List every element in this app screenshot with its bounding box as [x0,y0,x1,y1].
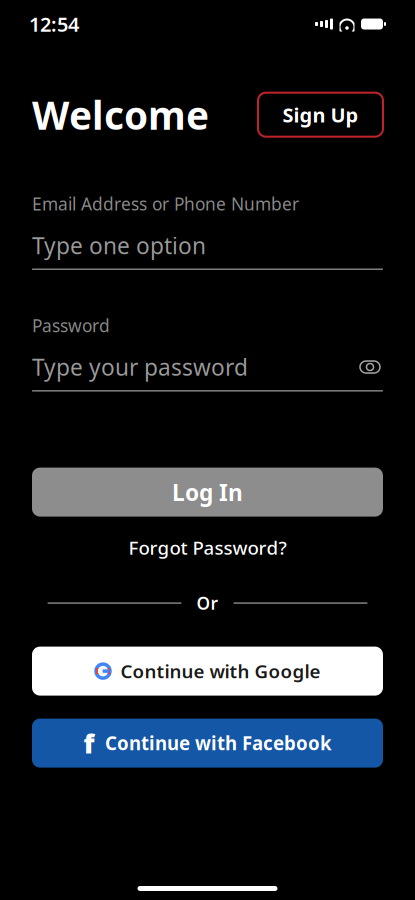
staticText: Log In [172,477,243,507]
button[interactable]: Forgot Password? [128,538,286,558]
staticText: Forgot Password? [128,535,286,560]
staticText: Continue with Google [120,659,320,683]
staticText: f [83,725,94,761]
staticText: 12:54 [29,11,79,37]
staticText: Type your password [32,352,248,382]
staticText: Sign Up [282,101,358,128]
staticText: Or [196,592,218,615]
button[interactable]: f [32,719,383,768]
button[interactable]: Continue with Google [32,647,383,696]
staticText: Password [32,314,110,337]
staticText: Email Address or Phone Number [32,192,299,215]
staticText: Welcome [32,89,209,140]
button[interactable]: Sign Up [258,93,383,137]
staticText: Continue with Facebook [105,731,332,755]
button[interactable]: Show password [357,357,383,377]
button[interactable]: Log In [32,468,383,517]
staticText: Type one option [32,230,206,260]
